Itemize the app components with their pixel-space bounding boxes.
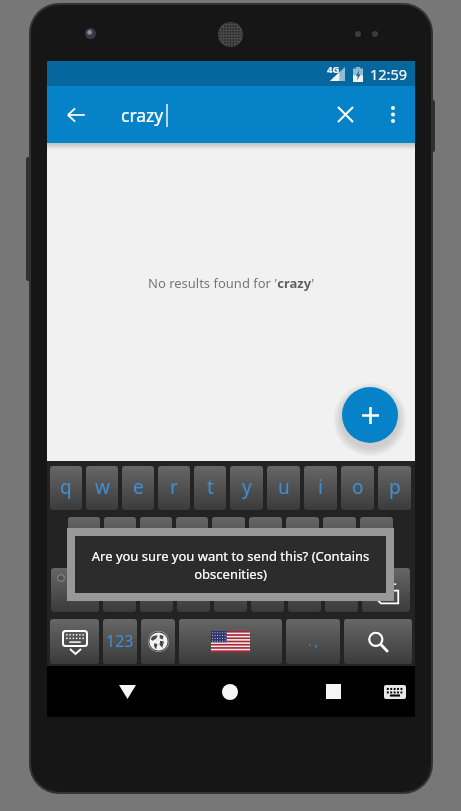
button[interactable]: Recent apps	[307, 666, 359, 717]
staticText: s	[115, 525, 125, 551]
button[interactable]: a	[68, 517, 100, 561]
staticText: f	[189, 525, 196, 551]
button[interactable]: h	[249, 517, 282, 561]
button[interactable]: Home	[204, 666, 256, 717]
staticText: r	[170, 474, 178, 500]
button[interactable]: b	[251, 568, 284, 612]
button[interactable]: w	[86, 466, 118, 510]
staticText: y	[242, 474, 252, 500]
button[interactable]: Back	[51, 90, 100, 139]
staticText: w	[95, 474, 110, 500]
staticText: v	[226, 576, 236, 602]
staticText: . ,	[308, 632, 319, 650]
staticText: i	[318, 474, 323, 500]
button[interactable]: 123	[103, 619, 137, 664]
button[interactable]: y	[230, 466, 263, 510]
staticText: 12:59	[370, 64, 408, 84]
button[interactable]: v	[214, 568, 247, 612]
button[interactable]: f	[176, 517, 208, 561]
button[interactable]: k	[323, 517, 356, 561]
button[interactable]: x	[140, 568, 173, 612]
staticText: m	[333, 576, 351, 602]
staticText: l	[374, 525, 379, 551]
staticText: crazy	[121, 103, 164, 127]
staticText: DEL	[376, 573, 397, 588]
staticText: n	[299, 576, 311, 602]
staticText: c	[189, 576, 199, 602]
button[interactable]: q	[50, 466, 82, 510]
button[interactable]	[51, 568, 99, 612]
staticText: o	[352, 474, 364, 500]
staticText: u	[278, 474, 290, 500]
button[interactable]: j	[286, 517, 319, 561]
staticText: h	[260, 525, 272, 551]
staticText: z	[115, 576, 124, 602]
staticText: g	[223, 525, 235, 551]
staticText: j	[300, 525, 305, 551]
button[interactable]: p	[378, 466, 411, 510]
button[interactable]	[344, 619, 412, 664]
staticText: 123	[106, 630, 134, 652]
button[interactable]: r	[158, 466, 190, 510]
button[interactable]: c	[177, 568, 210, 612]
staticText: x	[151, 576, 162, 602]
staticText: a	[79, 525, 90, 551]
button[interactable]: DEL	[362, 568, 410, 612]
button[interactable]: m	[325, 568, 358, 612]
button[interactable]	[50, 619, 99, 664]
button[interactable]	[179, 619, 282, 664]
button[interactable]: Clear search	[323, 92, 368, 137]
button[interactable]: u	[267, 466, 300, 510]
button[interactable]: . ,	[286, 619, 340, 664]
staticText: p	[389, 474, 401, 500]
staticText: No results found for 'crazy'	[148, 274, 315, 292]
staticText: d	[150, 525, 162, 551]
staticText: b	[262, 576, 274, 602]
button[interactable]	[141, 619, 175, 664]
button[interactable]: o	[341, 466, 374, 510]
button[interactable]: n	[288, 568, 321, 612]
button[interactable]: More options	[372, 94, 413, 135]
button[interactable]: l	[360, 517, 393, 561]
button[interactable]: z	[103, 568, 136, 612]
button[interactable]: s	[104, 517, 136, 561]
button[interactable]: d	[140, 517, 172, 561]
button[interactable]: t	[194, 466, 226, 510]
staticText: Are you sure you want to send this? (Con…	[75, 547, 386, 583]
button[interactable]: g	[212, 517, 245, 561]
button[interactable]: Back	[101, 666, 153, 717]
button[interactable]: i	[304, 466, 337, 510]
button[interactable]: Add	[342, 387, 398, 443]
staticText: t	[207, 474, 214, 500]
staticText: 4G	[327, 63, 340, 76]
staticText: e	[133, 474, 144, 500]
button[interactable]: Switch keyboard	[370, 666, 419, 717]
staticText: k	[334, 525, 345, 551]
staticText: q	[60, 474, 72, 500]
button[interactable]: e	[122, 466, 154, 510]
